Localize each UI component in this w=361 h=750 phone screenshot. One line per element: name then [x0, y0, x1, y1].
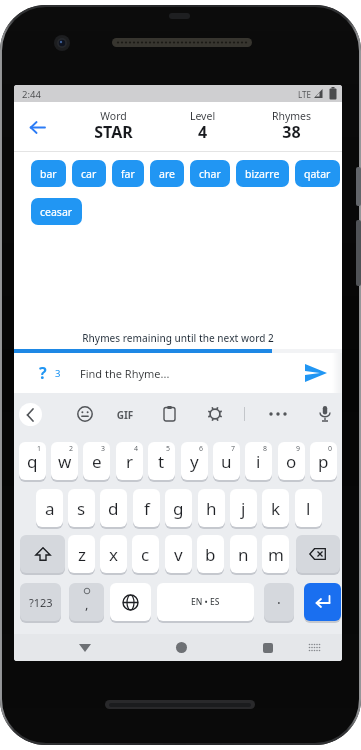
button[interactable]: char — [190, 160, 230, 187]
button[interactable]: e — [83, 442, 110, 480]
staticText: r — [126, 450, 134, 473]
staticText: a — [45, 497, 55, 520]
staticText: 9 — [296, 444, 301, 454]
staticText: z — [78, 543, 86, 566]
button[interactable]: q — [19, 442, 46, 480]
button[interactable] — [73, 402, 97, 426]
staticText: p — [318, 450, 329, 473]
button[interactable]: a — [36, 489, 63, 527]
staticText: k — [271, 497, 281, 520]
staticText: ? — [39, 362, 47, 384]
staticText: 5 — [166, 444, 171, 454]
button[interactable] — [110, 583, 151, 621]
staticText: n — [238, 543, 249, 566]
staticText: Level — [158, 109, 247, 123]
button[interactable]: c — [132, 535, 159, 573]
staticText: 7 — [231, 444, 236, 454]
button[interactable]: r — [116, 442, 143, 480]
button[interactable]: qatar — [295, 160, 340, 187]
button[interactable]: are — [150, 160, 184, 187]
button[interactable]: d — [100, 489, 127, 527]
button[interactable]: o — [278, 442, 305, 480]
button[interactable] — [313, 402, 337, 426]
staticText: 6 — [199, 444, 204, 454]
button[interactable]: car — [72, 160, 106, 187]
staticText: l — [306, 497, 311, 520]
button[interactable]: s — [68, 489, 95, 527]
button[interactable]: EN • ES — [157, 583, 254, 621]
staticText: f — [144, 497, 150, 520]
staticText: v — [174, 543, 183, 566]
staticText: char — [199, 167, 221, 181]
button[interactable] — [253, 634, 283, 661]
button[interactable]: z — [68, 535, 95, 573]
button[interactable]: . — [264, 583, 294, 621]
staticText: bizarre — [245, 167, 280, 181]
button[interactable] — [304, 583, 341, 621]
staticText: 2:44 — [22, 88, 62, 101]
button[interactable]: ? — [14, 353, 342, 393]
button[interactable]: h — [198, 489, 225, 527]
staticText: s — [77, 497, 86, 520]
button[interactable] — [20, 535, 65, 573]
button[interactable]: j — [230, 489, 257, 527]
button[interactable]: k — [262, 489, 289, 527]
button[interactable]: p — [310, 442, 337, 480]
button[interactable]: i — [245, 442, 272, 480]
staticText: t — [158, 450, 165, 473]
button[interactable] — [70, 634, 100, 661]
button[interactable]: u — [213, 442, 240, 480]
button[interactable] — [158, 402, 182, 426]
button[interactable]: bar — [31, 160, 66, 187]
staticText: c — [141, 543, 150, 566]
button[interactable]: y — [181, 442, 208, 480]
staticText: m — [268, 543, 284, 566]
staticText: GIF — [111, 408, 139, 422]
button[interactable]: far — [112, 160, 144, 187]
button[interactable]: n — [230, 535, 257, 573]
staticText: o — [286, 450, 297, 473]
button[interactable]: ceasar — [31, 198, 82, 225]
staticText: ?123 — [29, 595, 53, 610]
staticText: . — [277, 589, 281, 608]
staticText: 4 — [134, 444, 139, 454]
button[interactable]: g — [165, 489, 192, 527]
staticText: g — [173, 497, 184, 520]
button[interactable]: x — [100, 535, 127, 573]
button[interactable]: l — [295, 489, 322, 527]
button[interactable]: t — [148, 442, 175, 480]
staticText: Find the Rhyme... — [80, 366, 170, 381]
staticText: , — [85, 595, 89, 613]
staticText: STAR — [69, 121, 158, 143]
staticText: Word — [69, 109, 158, 123]
button[interactable]: bizarre — [236, 160, 289, 187]
staticText: are — [159, 167, 175, 181]
staticText: 3 — [101, 444, 106, 454]
button[interactable] — [302, 634, 326, 661]
button[interactable]: b — [197, 535, 224, 573]
staticText: 8 — [263, 444, 268, 454]
button[interactable] — [166, 634, 196, 661]
staticText: ceasar — [40, 205, 73, 219]
button[interactable] — [20, 113, 60, 143]
button[interactable] — [296, 535, 340, 573]
staticText: d — [108, 497, 119, 520]
staticText: i — [256, 450, 261, 473]
button[interactable]: ?123 — [20, 583, 61, 621]
button[interactable] — [203, 402, 227, 426]
button[interactable]: v — [165, 535, 192, 573]
staticText: w — [58, 450, 72, 473]
button[interactable]: w — [51, 442, 78, 480]
staticText: u — [221, 450, 232, 473]
button[interactable]: m — [262, 535, 289, 573]
staticText: Rhymes — [247, 109, 336, 123]
button[interactable]: , — [69, 583, 104, 621]
button[interactable]: f — [133, 489, 160, 527]
staticText: 4 — [158, 121, 247, 143]
staticText: 38 — [247, 121, 336, 143]
staticText: e — [92, 450, 102, 473]
staticText: Rhymes remaining until the next word 2 — [14, 331, 342, 345]
staticText: j — [241, 497, 246, 520]
staticText: 3 — [55, 367, 61, 380]
button[interactable] — [19, 403, 42, 426]
